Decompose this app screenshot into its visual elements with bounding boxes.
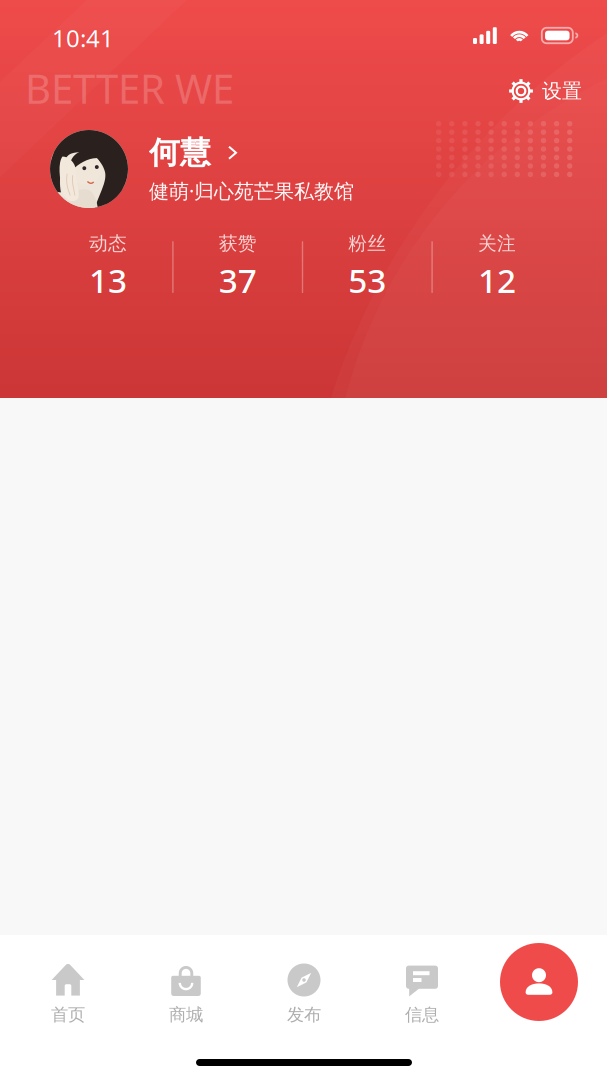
staticText: 关注: [478, 232, 516, 255]
button[interactable]: 发布: [245, 963, 363, 1025]
button[interactable]: 动态: [44, 232, 172, 302]
button[interactable]: 我的: [500, 943, 578, 1021]
staticText: 信息: [405, 1004, 439, 1025]
staticText: BETTER WE: [25, 61, 234, 115]
staticText: 53: [348, 258, 386, 302]
button[interactable]: 何慧: [50, 130, 354, 208]
staticText: 动态: [89, 232, 127, 255]
staticText: 发布: [287, 1004, 321, 1025]
button[interactable]: 获赞: [174, 232, 302, 302]
staticText: 商城: [169, 1004, 203, 1025]
button[interactable]: 设置: [504, 72, 586, 110]
button[interactable]: 信息: [363, 963, 481, 1025]
staticText: 12: [478, 258, 516, 302]
staticText: 健萌·归心苑芒果私教馆: [149, 178, 354, 204]
staticText: 粉丝: [348, 232, 386, 255]
staticText: 设置: [542, 79, 582, 103]
staticText: 首页: [51, 1004, 85, 1025]
button[interactable]: 关注: [433, 232, 561, 302]
button[interactable]: 粉丝: [303, 232, 431, 302]
staticText: 获赞: [219, 232, 257, 255]
staticText: 37: [219, 258, 257, 302]
button[interactable]: 商城: [127, 963, 245, 1025]
button[interactable]: 首页: [9, 963, 127, 1025]
staticText: 10:41: [52, 22, 114, 54]
staticText: 何慧: [149, 134, 211, 172]
staticText: 13: [89, 258, 127, 302]
